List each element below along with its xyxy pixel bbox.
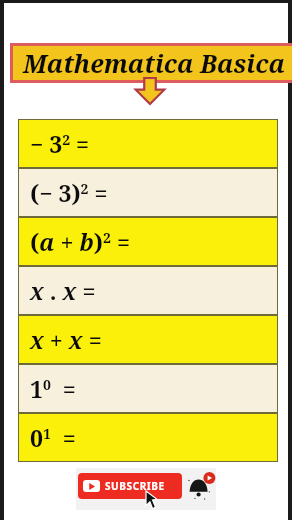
button[interactable]: x + x = <box>19 316 277 363</box>
button[interactable]: (− 3)2 = <box>19 169 277 216</box>
button[interactable]: − 32 = <box>19 120 277 167</box>
staticText: − 32 = <box>30 128 90 159</box>
button[interactable]: (a + b)2 = <box>19 218 277 265</box>
button[interactable]: x . x = <box>19 267 277 314</box>
button[interactable]: Notification bell <box>186 472 216 502</box>
staticText: x + x = <box>30 324 102 355</box>
staticText: x . x = <box>30 275 96 306</box>
staticText: Mathematica Basica <box>23 46 286 80</box>
button[interactable]: 01 = <box>19 414 277 461</box>
staticText: (− 3)2 = <box>30 177 108 208</box>
button[interactable]: Subscribe <box>78 473 182 499</box>
staticText: SUBSCRIBE <box>105 479 165 493</box>
button[interactable]: Mathematica Basica <box>13 46 292 80</box>
staticText: 10 = <box>30 373 76 404</box>
staticText: 01 = <box>30 422 76 453</box>
button[interactable]: 10 = <box>19 365 277 412</box>
staticText: (a + b)2 = <box>30 226 130 257</box>
